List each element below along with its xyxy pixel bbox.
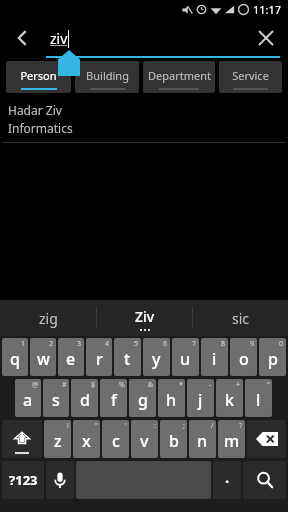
staticText: y: [152, 348, 161, 370]
staticText: m: [224, 430, 240, 452]
staticText: .: [225, 467, 230, 487]
staticText: 8: [221, 339, 226, 349]
button[interactable]: Person: [6, 61, 71, 93]
button[interactable]: j: [187, 379, 214, 417]
button[interactable]: y: [143, 338, 170, 376]
staticText: x: [82, 430, 91, 452]
staticText: ziv: [50, 29, 68, 48]
staticText: @: [32, 380, 39, 390]
staticText: 4: [105, 339, 110, 349]
button[interactable]: e: [58, 338, 84, 376]
staticText: q: [10, 348, 20, 370]
staticText: zig: [39, 309, 58, 328]
staticText: p: [268, 348, 278, 370]
button[interactable]: .: [213, 461, 241, 499]
staticText: f: [111, 389, 117, 411]
button[interactable]: Back: [6, 22, 38, 54]
button[interactable]: Voice input: [46, 461, 74, 499]
button[interactable]: h: [158, 379, 185, 417]
staticText: Service: [232, 68, 269, 83]
staticText: Person: [20, 68, 57, 83]
staticText: ': [125, 421, 127, 431]
staticText: $: [91, 380, 96, 390]
staticText: g: [138, 389, 148, 411]
staticText: k: [225, 389, 234, 411]
staticText: ?: [239, 421, 243, 431]
staticText: &: [148, 380, 154, 390]
staticText: a: [23, 389, 33, 411]
button[interactable]: x: [73, 420, 100, 458]
staticText: #: [62, 380, 67, 390]
staticText: s: [52, 389, 60, 411]
button[interactable]: i: [201, 338, 228, 376]
staticText: -: [209, 380, 212, 390]
button[interactable]: z: [44, 420, 71, 458]
staticText: 1: [21, 339, 26, 349]
staticText: /: [211, 421, 214, 431]
staticText: r: [96, 348, 103, 370]
button[interactable]: v: [131, 420, 158, 458]
button[interactable]: b: [160, 420, 187, 458]
staticText: 9: [250, 339, 255, 349]
staticText: 0: [279, 339, 284, 349]
button[interactable]: zig: [0, 300, 96, 336]
staticText: n: [197, 430, 208, 452]
button[interactable]: Department: [143, 61, 215, 93]
staticText: 11:17: [253, 2, 282, 17]
button[interactable]: Ziv: [97, 300, 192, 336]
button[interactable]: Service: [219, 61, 282, 93]
staticText: :: [154, 421, 156, 431]
staticText: w: [37, 348, 50, 370]
button[interactable]: m: [218, 420, 245, 458]
button[interactable]: Building: [75, 61, 139, 93]
staticText: Ziv: [135, 307, 155, 326]
staticText: h: [166, 389, 177, 411]
button[interactable]: w: [30, 338, 56, 376]
button[interactable]: Clear search: [250, 22, 282, 54]
staticText: j: [198, 389, 203, 411]
staticText: z: [54, 430, 62, 452]
button[interactable]: s: [43, 379, 69, 417]
button[interactable]: Shift: [2, 420, 42, 458]
staticText: u: [180, 348, 191, 370]
button[interactable]: q: [2, 338, 28, 376]
staticText: Hadar Ziv: [8, 102, 62, 118]
staticText: Department: [148, 68, 211, 83]
staticText: e: [66, 348, 76, 370]
staticText: v: [140, 430, 149, 452]
button[interactable]: sic: [193, 300, 288, 336]
staticText: !: [67, 421, 69, 431]
button[interactable]: o: [230, 338, 257, 376]
button[interactable]: Hadar Ziv: [0, 96, 288, 142]
button[interactable]: ?123: [2, 461, 44, 499]
button[interactable]: g: [129, 379, 156, 417]
staticText: b: [169, 430, 179, 452]
staticText: ;: [183, 421, 185, 431]
staticText: ": [95, 421, 98, 431]
staticText: ": [267, 380, 270, 390]
button[interactable]: l: [245, 379, 272, 417]
button[interactable]: n: [189, 420, 216, 458]
button[interactable]: k: [216, 379, 243, 417]
staticText: o: [239, 348, 249, 370]
staticText: Informatics: [8, 120, 73, 136]
staticText: Building: [86, 68, 129, 83]
staticText: c: [112, 430, 120, 452]
staticText: 7: [192, 339, 197, 349]
staticText: +: [236, 380, 241, 390]
staticText: 5: [134, 339, 139, 349]
button[interactable]: r: [86, 338, 112, 376]
button[interactable]: Search: [243, 461, 286, 499]
button[interactable]: u: [172, 338, 199, 376]
staticText: 2: [49, 339, 54, 349]
button[interactable]: d: [71, 379, 98, 417]
staticText: 3: [77, 339, 82, 349]
button[interactable]: c: [102, 420, 129, 458]
button[interactable]: f: [100, 379, 127, 417]
button[interactable]: Backspace: [247, 420, 286, 458]
button[interactable]: a: [15, 379, 41, 417]
button[interactable]: p: [259, 338, 286, 376]
button[interactable]: t: [114, 338, 141, 376]
staticText: i: [212, 348, 217, 370]
